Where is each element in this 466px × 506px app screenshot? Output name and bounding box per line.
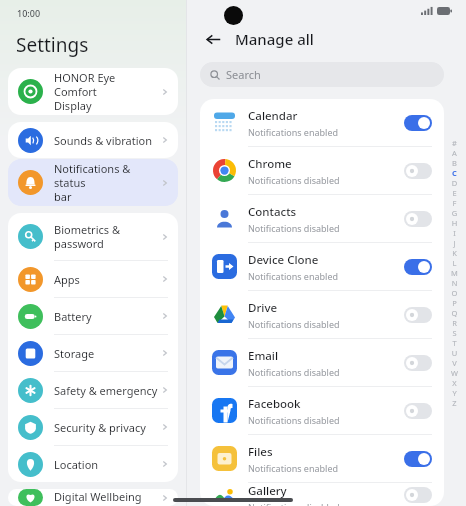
button[interactable]: Apps bbox=[8, 261, 178, 297]
button[interactable]: Safety & emergency bbox=[8, 372, 178, 408]
staticText: K bbox=[448, 248, 461, 258]
staticText: J bbox=[448, 238, 461, 248]
staticText: Notifications disabled bbox=[248, 174, 340, 186]
button[interactable]: Files bbox=[200, 435, 444, 482]
staticText: HONOR Eye Comfort Display bbox=[54, 70, 160, 113]
staticText: Location bbox=[54, 457, 160, 472]
staticText: Sounds & vibration bbox=[54, 133, 160, 148]
button[interactable]: Gallery bbox=[200, 483, 444, 506]
staticText: Calendar bbox=[248, 108, 298, 124]
staticText: D bbox=[448, 178, 461, 188]
staticText: A bbox=[448, 148, 461, 158]
staticText: I bbox=[448, 228, 461, 238]
staticText: Search bbox=[226, 67, 261, 82]
staticText: Z bbox=[448, 398, 461, 408]
button[interactable]: Location bbox=[8, 446, 178, 482]
staticText: Security & privacy bbox=[54, 420, 160, 435]
staticText: G bbox=[448, 208, 461, 218]
staticText: Notifications disabled bbox=[248, 501, 340, 506]
staticText: B bbox=[448, 158, 461, 168]
staticText: Notifications disabled bbox=[248, 318, 340, 330]
button[interactable]: Device Clone bbox=[200, 243, 444, 290]
staticText: S bbox=[448, 328, 461, 338]
button[interactable]: Sounds & vibration bbox=[8, 122, 178, 158]
staticText: Storage bbox=[54, 346, 160, 361]
button[interactable]: Drive bbox=[200, 291, 444, 338]
staticText: # bbox=[448, 138, 461, 148]
staticText: C bbox=[448, 168, 461, 178]
staticText: Notifications disabled bbox=[248, 222, 340, 234]
button[interactable]: Toggle notifications for Contacts bbox=[404, 211, 432, 227]
staticText: Notifications enabled bbox=[248, 126, 339, 138]
button[interactable]: Toggle notifications for Drive bbox=[404, 307, 432, 323]
staticText: Safety & emergency bbox=[54, 383, 160, 398]
staticText: O bbox=[448, 288, 461, 298]
staticText: Settings bbox=[16, 32, 89, 58]
staticText: L bbox=[448, 258, 461, 268]
staticText: Contacts bbox=[248, 204, 297, 220]
button[interactable]: Toggle notifications for Device Clone bbox=[404, 259, 432, 275]
staticText: Gallery bbox=[248, 483, 287, 499]
button[interactable]: Toggle notifications for Chrome bbox=[404, 163, 432, 179]
button[interactable]: Toggle notifications for Facebook bbox=[404, 403, 432, 419]
staticText: E bbox=[448, 188, 461, 198]
button[interactable]: Storage bbox=[8, 335, 178, 371]
button[interactable]: Contacts bbox=[200, 195, 444, 242]
staticText: R bbox=[448, 318, 461, 328]
button[interactable]: Security & privacy bbox=[8, 409, 178, 445]
staticText: F bbox=[448, 198, 461, 208]
button[interactable]: Email bbox=[200, 339, 444, 386]
staticText: Drive bbox=[248, 300, 278, 316]
staticText: Notifications enabled bbox=[248, 462, 339, 474]
staticText: Apps bbox=[54, 272, 160, 287]
staticText: H bbox=[448, 218, 461, 228]
staticText: N bbox=[448, 278, 461, 288]
button[interactable]: HONOR Eye Comfort Display bbox=[8, 68, 178, 115]
button[interactable]: Calendar bbox=[200, 99, 444, 146]
button[interactable]: Digital Wellbeing and parental controls bbox=[8, 489, 178, 506]
staticText: U bbox=[448, 348, 461, 358]
staticText: Biometrics & password bbox=[54, 222, 160, 251]
staticText: Y bbox=[448, 388, 461, 398]
staticText: W bbox=[448, 368, 461, 378]
staticText: Files bbox=[248, 444, 273, 460]
button[interactable]: Notifications & status bar bbox=[8, 159, 178, 206]
button[interactable]: Biometrics & password bbox=[8, 213, 178, 260]
button[interactable]: Battery bbox=[8, 298, 178, 334]
staticText: Device Clone bbox=[248, 252, 319, 268]
button[interactable]: Search bbox=[200, 62, 444, 87]
staticText: V bbox=[448, 358, 461, 368]
staticText: Battery bbox=[54, 309, 160, 324]
button[interactable]: Toggle notifications for Files bbox=[404, 451, 432, 467]
button[interactable]: Toggle notifications for Email bbox=[404, 355, 432, 371]
staticText: Notifications & status bar bbox=[54, 161, 160, 204]
staticText: Chrome bbox=[248, 156, 292, 172]
staticText: Manage all bbox=[235, 29, 314, 49]
button[interactable]: Toggle notifications for Gallery bbox=[404, 487, 432, 503]
button[interactable]: Notifications & status bar bbox=[8, 159, 178, 206]
staticText: P bbox=[448, 298, 461, 308]
staticText: Notifications enabled bbox=[248, 270, 339, 282]
staticText: Facebook bbox=[248, 396, 301, 412]
staticText: Notifications disabled bbox=[248, 366, 340, 378]
staticText: Digital Wellbeing and parental controls bbox=[54, 489, 160, 506]
staticText: Notifications disabled bbox=[248, 414, 340, 426]
staticText: 10:00 bbox=[17, 7, 41, 19]
staticText: X bbox=[448, 378, 461, 388]
staticText: Email bbox=[248, 348, 279, 364]
staticText: Q bbox=[448, 308, 461, 318]
staticText: M bbox=[448, 268, 461, 278]
button[interactable]: Facebook bbox=[200, 387, 444, 434]
button[interactable]: Chrome bbox=[200, 147, 444, 194]
staticText: T bbox=[448, 338, 461, 348]
button[interactable]: Toggle notifications for Calendar bbox=[404, 115, 432, 131]
button[interactable]: Back bbox=[201, 27, 225, 51]
